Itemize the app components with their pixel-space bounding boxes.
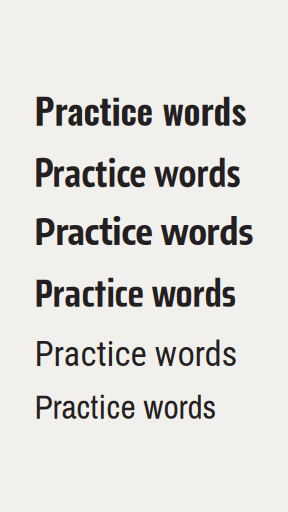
staticText: Practice words [34, 384, 216, 429]
staticText: Practice words [34, 208, 253, 253]
staticText: Practice words [34, 334, 237, 374]
staticText: Practice words [34, 263, 236, 324]
staticText: Practice words [34, 83, 246, 136]
staticText: Practice words [34, 146, 240, 198]
